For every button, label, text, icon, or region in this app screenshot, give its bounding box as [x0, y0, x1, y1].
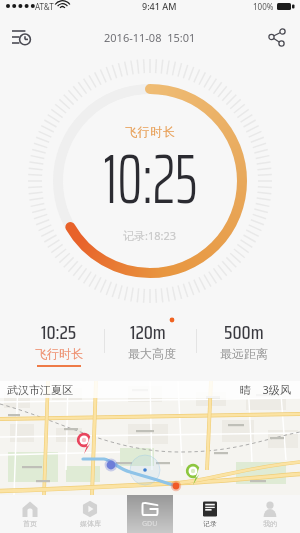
staticText: 最大高度: [128, 346, 176, 361]
staticText: 我的: [263, 519, 277, 528]
button[interactable]: 我的: [240, 495, 300, 533]
staticText: 飞行时长: [125, 124, 176, 139]
button[interactable]: History: [4, 20, 38, 54]
button[interactable]: GDU: [120, 495, 180, 533]
button[interactable]: 媒体库: [60, 495, 120, 533]
staticText: 晴 3级风: [240, 382, 291, 397]
button[interactable]: 记录: [180, 495, 240, 533]
staticText: AT&T: [35, 1, 54, 12]
staticText: 记录:18:23: [123, 228, 177, 243]
staticText: 10:25: [103, 124, 198, 234]
staticText: 100%: [253, 1, 274, 12]
button[interactable]: 10:25: [13, 306, 105, 381]
button[interactable]: 首页: [0, 495, 60, 533]
staticText: 2016-11-08 15:01: [104, 30, 196, 45]
staticText: 媒体库: [80, 519, 101, 528]
staticText: 首页: [23, 519, 37, 528]
staticText: 10:25: [41, 317, 77, 347]
staticText: 最远距离: [220, 346, 268, 361]
staticText: 9:41 AM: [142, 0, 177, 12]
staticText: 120m: [130, 317, 166, 347]
staticText: 武汉市江夏区: [7, 383, 73, 397]
staticText: 飞行时长: [35, 346, 83, 361]
button[interactable]: Share: [260, 20, 294, 54]
button[interactable]: 500m: [198, 306, 290, 381]
staticText: 500m: [224, 317, 264, 347]
button[interactable]: 120m: [106, 306, 198, 381]
staticText: 记录: [203, 519, 217, 528]
staticText: GDU: [142, 519, 158, 529]
